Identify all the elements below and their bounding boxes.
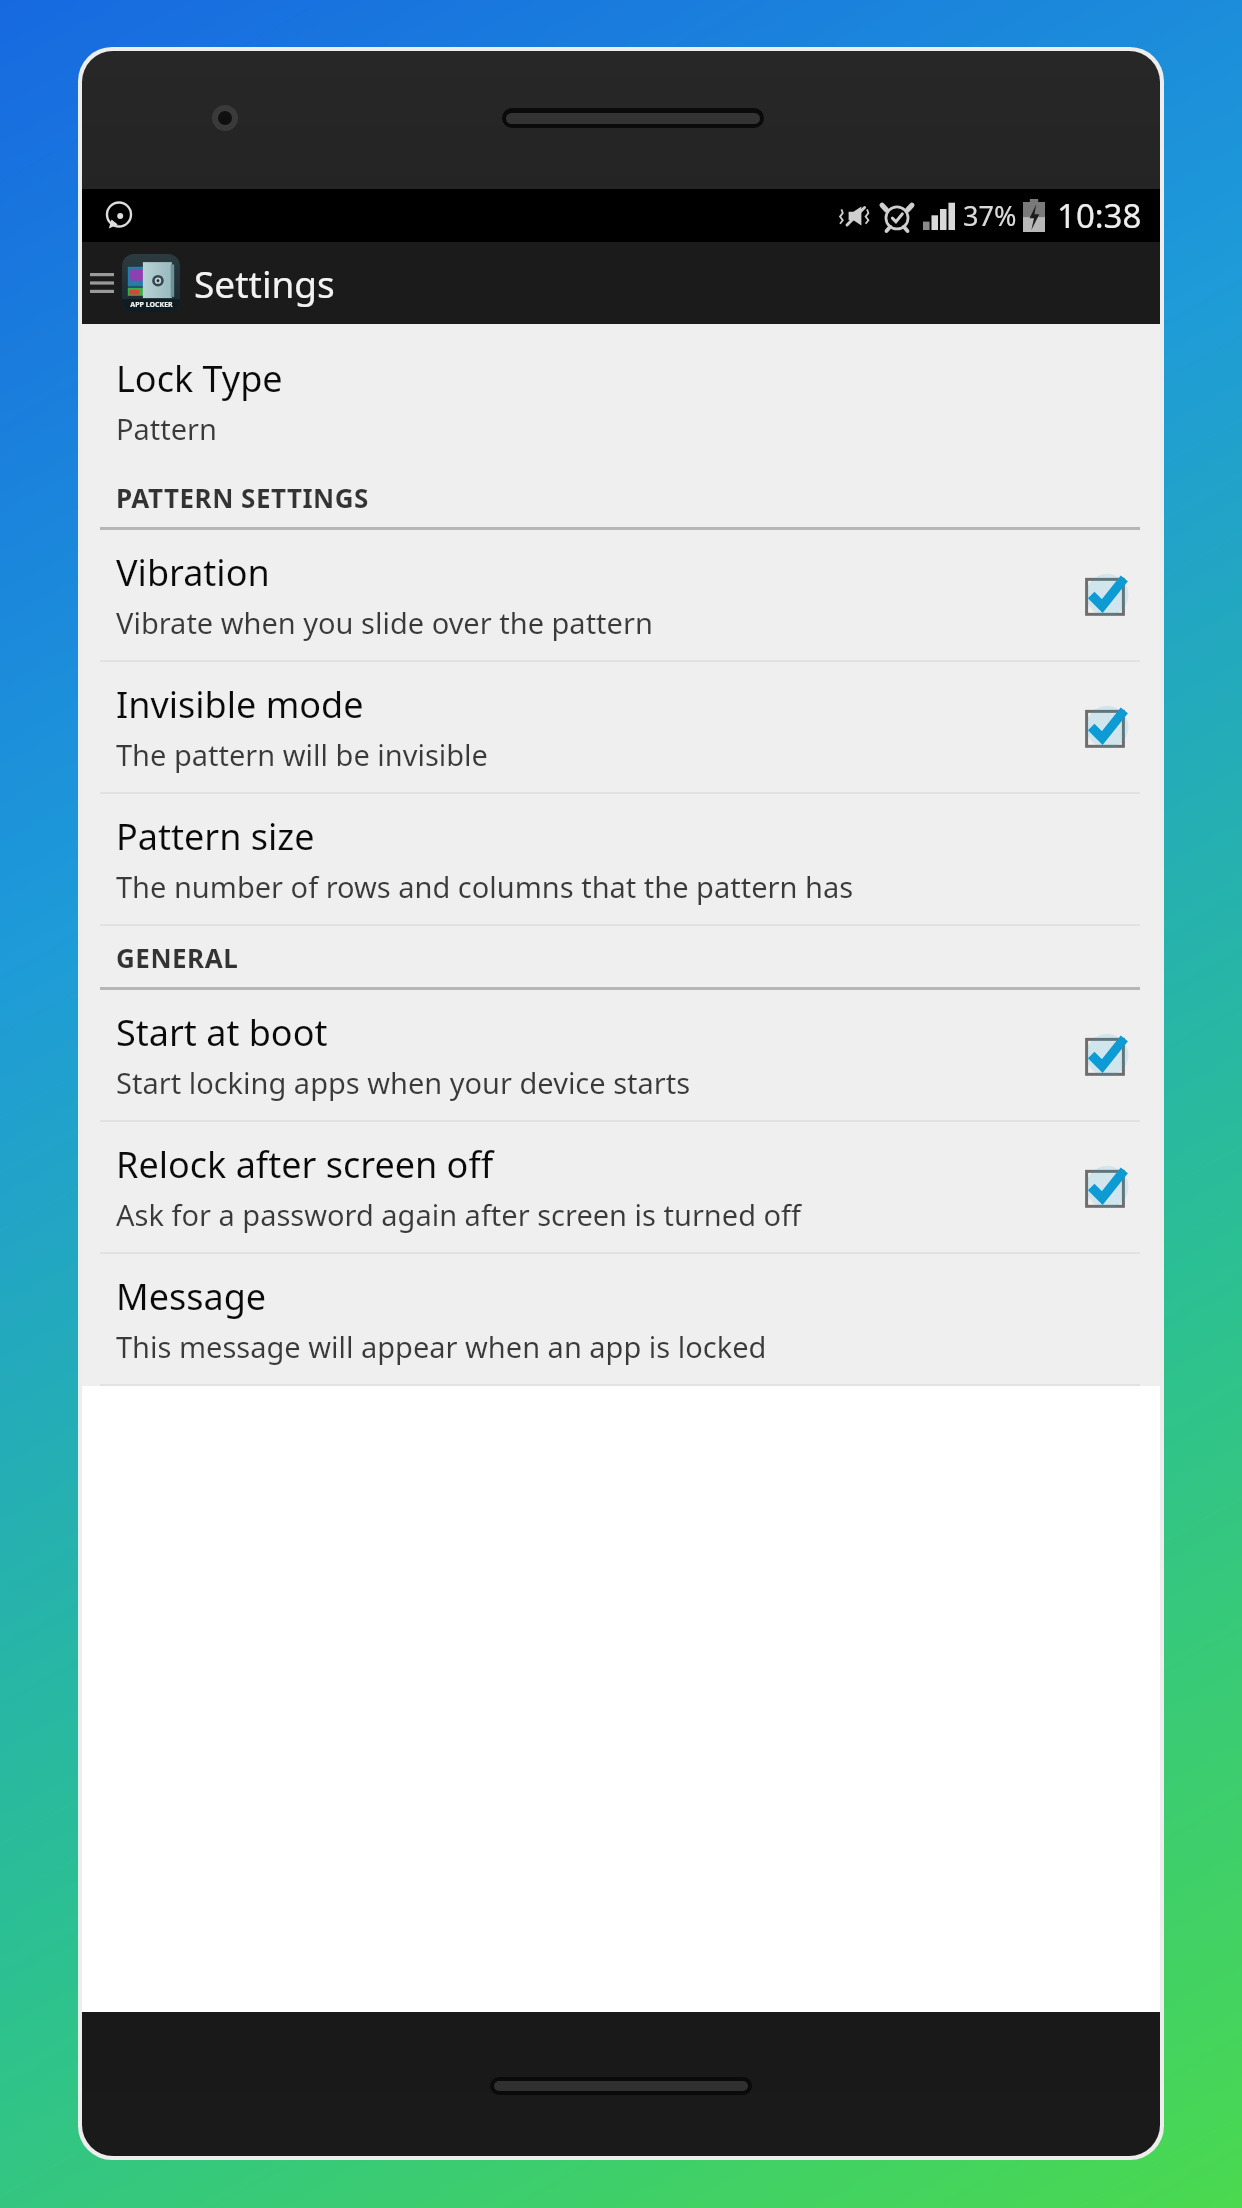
- staticText: Start locking apps when your device star…: [116, 1063, 691, 1102]
- button[interactable]: Lock Type: [82, 324, 1160, 466]
- staticText: This message will appear when an app is …: [116, 1327, 767, 1366]
- staticText: Settings: [194, 258, 335, 308]
- staticText: Message: [116, 1272, 267, 1321]
- staticText: 10:38: [1057, 193, 1142, 238]
- staticText: Ask for a password again after screen is…: [116, 1195, 802, 1234]
- staticText: GENERAL: [116, 940, 239, 975]
- staticText: Pattern: [116, 409, 218, 448]
- button[interactable]: Vibration: [82, 530, 1160, 662]
- staticText: PATTERN SETTINGS: [116, 480, 369, 515]
- button[interactable]: Message: [82, 1254, 1160, 1386]
- button[interactable]: Relock after screen off: [82, 1122, 1160, 1254]
- button[interactable]: Pattern size: [82, 794, 1160, 926]
- staticText: The number of rows and columns that the …: [116, 867, 854, 906]
- button[interactable]: Open navigation drawer: [82, 242, 122, 324]
- staticText: The pattern will be invisible: [116, 735, 488, 774]
- button[interactable]: Start at boot: [82, 990, 1160, 1122]
- staticText: Start at boot: [116, 1008, 328, 1057]
- button[interactable]: Invisible mode: [82, 662, 1160, 794]
- staticText: APP LOCKER: [130, 300, 173, 310]
- staticText: 37%: [963, 197, 1017, 234]
- staticText: Vibration: [116, 548, 270, 597]
- staticText: Lock Type: [116, 354, 283, 403]
- staticText: Pattern size: [116, 812, 315, 861]
- staticText: Vibrate when you slide over the pattern: [116, 603, 653, 642]
- staticText: Relock after screen off: [116, 1140, 494, 1189]
- staticText: Invisible mode: [116, 680, 364, 729]
